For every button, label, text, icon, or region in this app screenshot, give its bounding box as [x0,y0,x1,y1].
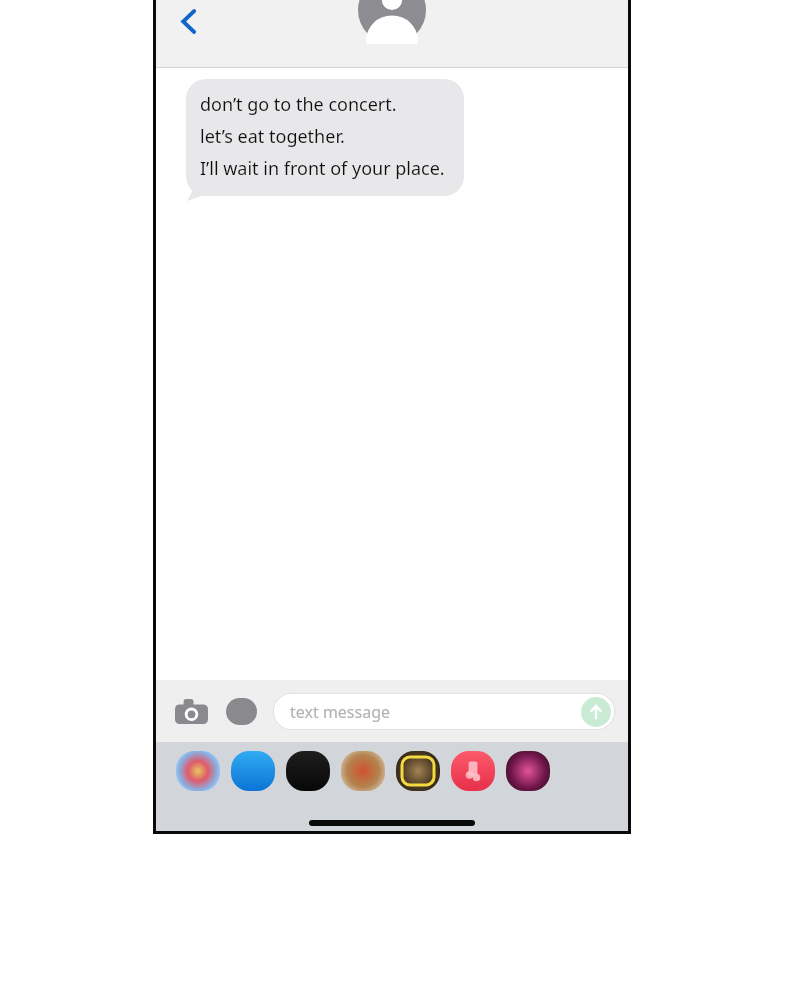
button[interactable]: App 3 [284,747,332,795]
staticText: I’ll wait in front of your place. [200,156,445,181]
button[interactable]: Back [165,0,211,42]
staticText: text message [290,701,391,723]
button[interactable]: text message [273,693,615,730]
button[interactable]: Damon [358,0,426,44]
button[interactable]: Home [309,820,475,826]
staticText: let’s eat together. [200,124,345,149]
button[interactable]: App 1 [174,747,222,795]
button[interactable]: App 4 [339,747,387,795]
button[interactable]: Send [581,697,611,727]
staticText: don’t go to the concert. [200,92,397,117]
button[interactable]: App 2 [229,747,277,795]
button[interactable]: Apps [221,691,261,731]
button[interactable]: App 7 [504,747,552,795]
button[interactable]: App 5 [394,747,442,795]
button[interactable]: don’t go to the concert. [186,79,464,196]
button[interactable]: App 6 [449,747,497,795]
button[interactable]: Camera [171,691,211,731]
